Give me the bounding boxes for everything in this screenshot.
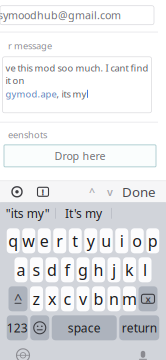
button[interactable]: 123 (7, 315, 28, 340)
staticText: Drop here (54, 149, 105, 163)
button[interactable]: Insert text (32, 182, 54, 202)
button[interactable]: y (84, 228, 97, 253)
staticText: r (56, 230, 63, 251)
staticText: o (132, 230, 142, 251)
button[interactable]: u (100, 228, 113, 253)
staticText: ve this mod soo much. I cant find it on (5, 62, 148, 87)
button[interactable]: AutoFill settings (6, 182, 28, 202)
staticText: d (47, 259, 57, 280)
staticText: e (40, 230, 49, 251)
staticText: s (32, 259, 40, 280)
staticText: w (22, 230, 35, 251)
staticText: x (48, 288, 56, 309)
staticText: j (112, 259, 116, 280)
button[interactable]: b (92, 286, 105, 311)
staticText: gymod.ape (5, 88, 56, 100)
staticText: Done (122, 183, 156, 201)
staticText: c (63, 288, 71, 309)
staticText: ^ (14, 289, 22, 309)
staticText: n (109, 288, 119, 309)
button[interactable]: x (45, 286, 58, 311)
button[interactable]: c (61, 286, 74, 311)
staticText: 123 (7, 320, 28, 336)
button[interactable]: a (14, 257, 27, 282)
button[interactable]: n (107, 286, 120, 311)
staticText: f (64, 259, 70, 280)
staticText: h (93, 259, 103, 280)
button[interactable]: Previous field (86, 186, 98, 198)
button[interactable]: h (92, 257, 105, 282)
button[interactable]: r (53, 228, 66, 253)
staticText: t (72, 230, 78, 251)
button[interactable]: Delete (138, 286, 157, 311)
button[interactable]: t (69, 228, 82, 253)
button[interactable]: Next field (104, 186, 116, 198)
button[interactable]: f (61, 257, 74, 282)
button[interactable]: Dictate (130, 344, 156, 360)
button[interactable]: l (138, 257, 151, 282)
button[interactable]: Emoji (30, 315, 49, 340)
staticText: u (101, 230, 111, 251)
button[interactable]: q (7, 228, 20, 253)
button[interactable]: space (52, 315, 117, 340)
button[interactable]: s (30, 257, 43, 282)
staticText: "its my" (6, 205, 50, 221)
staticText: p (148, 230, 158, 251)
staticText: , its my (56, 88, 86, 100)
staticText: l (143, 259, 147, 280)
staticText: a (16, 259, 25, 280)
staticText: return (122, 320, 157, 336)
button[interactable]: k (123, 257, 136, 282)
staticText: r message (8, 39, 52, 52)
staticText: q (8, 230, 18, 251)
staticText: x (145, 293, 150, 305)
staticText: space (68, 320, 101, 336)
staticText: v (79, 288, 87, 309)
button[interactable]: Done (116, 182, 162, 202)
staticText: g (78, 259, 88, 280)
staticText: symoodhub@gmail.com (0, 8, 121, 22)
staticText: ! (41, 186, 44, 198)
button[interactable]: "its my" (0, 203, 55, 223)
staticText: v (107, 185, 113, 199)
button[interactable]: return (119, 315, 159, 340)
button[interactable]: m (123, 286, 136, 311)
button[interactable]: Shift (8, 286, 27, 311)
staticText: It's my (65, 205, 102, 221)
staticText: m (122, 288, 137, 309)
button[interactable]: o (131, 228, 144, 253)
button[interactable]: It's my (56, 203, 111, 223)
staticText: ^ (89, 185, 95, 199)
staticText: i (120, 230, 124, 251)
button[interactable]: p (146, 228, 159, 253)
button[interactable]: g (76, 257, 89, 282)
button[interactable]: Drop here (4, 145, 156, 167)
staticText: b (93, 288, 103, 309)
button[interactable]: d (45, 257, 58, 282)
staticText: eenshots (8, 128, 47, 141)
staticText: y (87, 230, 95, 251)
staticText: k (125, 259, 134, 280)
button[interactable]: Change keyboard (10, 344, 36, 360)
button[interactable]: z (30, 286, 43, 311)
button[interactable]: j (107, 257, 120, 282)
button[interactable]: w (22, 228, 35, 253)
button[interactable]: i (115, 228, 128, 253)
button[interactable]: v (76, 286, 89, 311)
staticText: z (32, 288, 40, 309)
button[interactable]: e (38, 228, 51, 253)
